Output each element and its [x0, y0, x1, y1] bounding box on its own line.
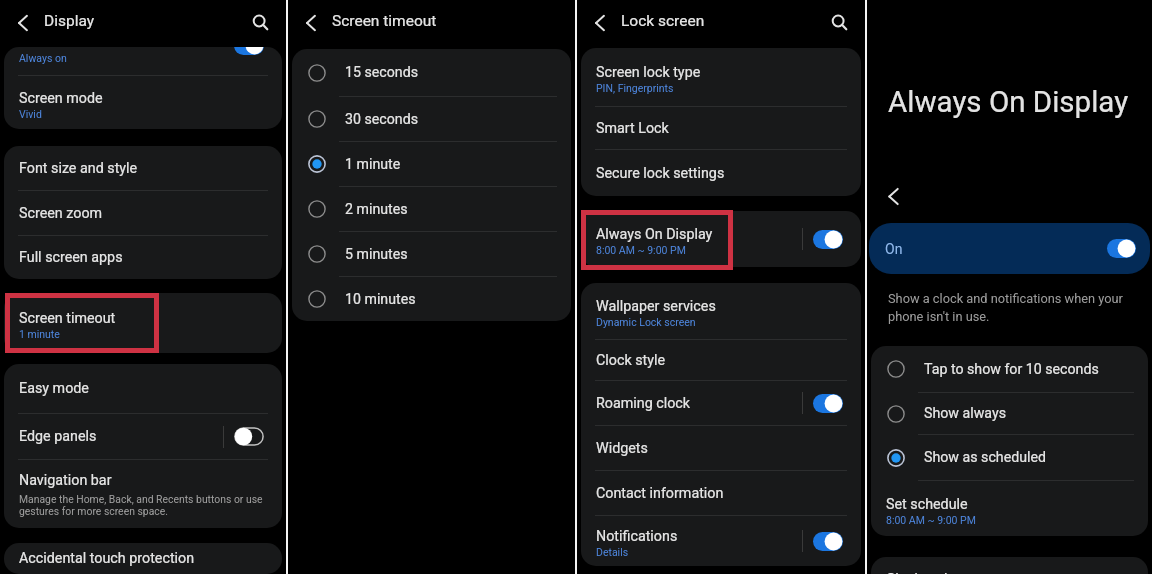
staticText: Screen timeout: [19, 310, 116, 327]
staticText: Clock style: [886, 571, 956, 574]
staticText: Roaming clock: [596, 395, 691, 412]
button[interactable]: On: [869, 223, 1150, 274]
button[interactable]: Secure lock settings: [581, 150, 861, 196]
staticText: Easy mode: [19, 380, 89, 397]
staticText: On: [885, 241, 1107, 257]
staticText: Font size and style: [19, 160, 138, 177]
button[interactable]: Show as scheduled: [871, 435, 1148, 480]
button[interactable]: Notifications toggle: [813, 532, 843, 551]
staticText: 30 seconds: [345, 111, 418, 128]
staticText: Show always: [924, 405, 1006, 422]
button[interactable]: 1 minute: [292, 142, 571, 186]
staticText: 8:00 AM ~ 9:00 PM: [596, 244, 686, 256]
staticText: Notifications: [596, 528, 678, 545]
button[interactable]: Screen timeout: [4, 293, 282, 353]
staticText: Widgets: [596, 440, 648, 457]
staticText: Clock style: [596, 352, 666, 369]
staticText: PIN, Fingerprints: [596, 82, 674, 94]
staticText: Screen mode: [19, 90, 103, 107]
button[interactable]: Search: [246, 8, 274, 36]
button[interactable]: Contact information: [581, 471, 861, 515]
staticText: Screen zoom: [19, 205, 103, 222]
button[interactable]: Search: [825, 8, 853, 36]
staticText: Always On Display: [888, 85, 1129, 120]
staticText: Always On Display: [596, 226, 713, 243]
staticText: Set schedule: [886, 496, 968, 513]
button[interactable]: Show always: [871, 393, 1148, 434]
button[interactable]: Set schedule: [871, 481, 1148, 536]
staticText: Full screen apps: [19, 249, 123, 266]
button[interactable]: Clock style: [871, 557, 1148, 574]
button[interactable]: Screen zoom: [4, 191, 282, 235]
staticText: Show a clock and notifications when your…: [888, 291, 1131, 324]
button[interactable]: Screen mode: [4, 76, 282, 129]
staticText: Always on: [19, 52, 67, 64]
staticText: 1 minute: [345, 156, 401, 173]
button[interactable]: Smart Lock: [581, 107, 861, 149]
staticText: Navigation bar: [19, 472, 112, 489]
button[interactable]: Tap to show for 10 seconds: [871, 346, 1148, 392]
button[interactable]: 5 minutes: [292, 232, 571, 276]
staticText: Details: [596, 546, 629, 558]
button[interactable]: Navigation bar: [4, 460, 282, 528]
button[interactable]: Clock style: [581, 340, 861, 380]
button[interactable]: 2 minutes: [292, 187, 571, 231]
button[interactable]: Navigate up: [299, 11, 323, 35]
staticText: Edge panels: [19, 428, 97, 445]
staticText: 8:00 AM ~ 9:00 PM: [886, 514, 976, 526]
button[interactable]: Always On Display: [581, 211, 861, 267]
staticText: Screen lock type: [596, 64, 701, 81]
button[interactable]: Wallpaper services: [581, 283, 861, 339]
staticText: Vivid: [19, 108, 42, 120]
button[interactable]: Font size and style: [4, 146, 282, 190]
button[interactable]: Notifications: [581, 516, 861, 566]
button[interactable]: 30 seconds: [292, 97, 571, 141]
button[interactable]: Navigate up: [881, 184, 905, 208]
button[interactable]: Roaming clock toggle: [813, 394, 843, 413]
staticText: 2 minutes: [345, 201, 408, 218]
staticText: 1 minute: [19, 328, 60, 340]
button[interactable]: Accidental touch protection: [4, 543, 282, 574]
staticText: Lock screen: [621, 12, 705, 30]
button[interactable]: Edge panels: [4, 414, 282, 459]
button[interactable]: Roaming clock: [581, 381, 861, 425]
button[interactable]: Navigate up: [11, 11, 35, 35]
staticText: Show as scheduled: [924, 449, 1046, 466]
button[interactable]: Always On Display toggle: [813, 230, 843, 249]
button[interactable]: Screen lock type: [581, 48, 861, 106]
staticText: Dynamic Lock screen: [596, 316, 696, 328]
staticText: Smart Lock: [596, 120, 669, 137]
staticText: Tap to show for 10 seconds: [924, 361, 1099, 378]
staticText: Contact information: [596, 485, 724, 502]
button[interactable]: Edge panels toggle: [234, 427, 264, 446]
staticText: Screen timeout: [332, 12, 437, 30]
button[interactable]: Always on: [4, 47, 282, 75]
staticText: 15 seconds: [345, 64, 418, 81]
button[interactable]: Full screen apps: [4, 236, 282, 279]
staticText: Manage the Home, Back, and Recents butto…: [19, 493, 270, 518]
button[interactable]: Widgets: [581, 426, 861, 470]
staticText: Display: [44, 12, 95, 30]
staticText: 5 minutes: [345, 246, 408, 263]
staticText: Secure lock settings: [596, 165, 725, 182]
staticText: Accidental touch protection: [19, 550, 195, 567]
staticText: Wallpaper services: [596, 298, 716, 315]
staticText: 10 minutes: [345, 291, 416, 308]
button[interactable]: Easy mode: [4, 364, 282, 413]
button[interactable]: 10 minutes: [292, 277, 571, 321]
button[interactable]: 15 seconds: [292, 49, 571, 96]
button[interactable]: Navigate up: [588, 11, 612, 35]
